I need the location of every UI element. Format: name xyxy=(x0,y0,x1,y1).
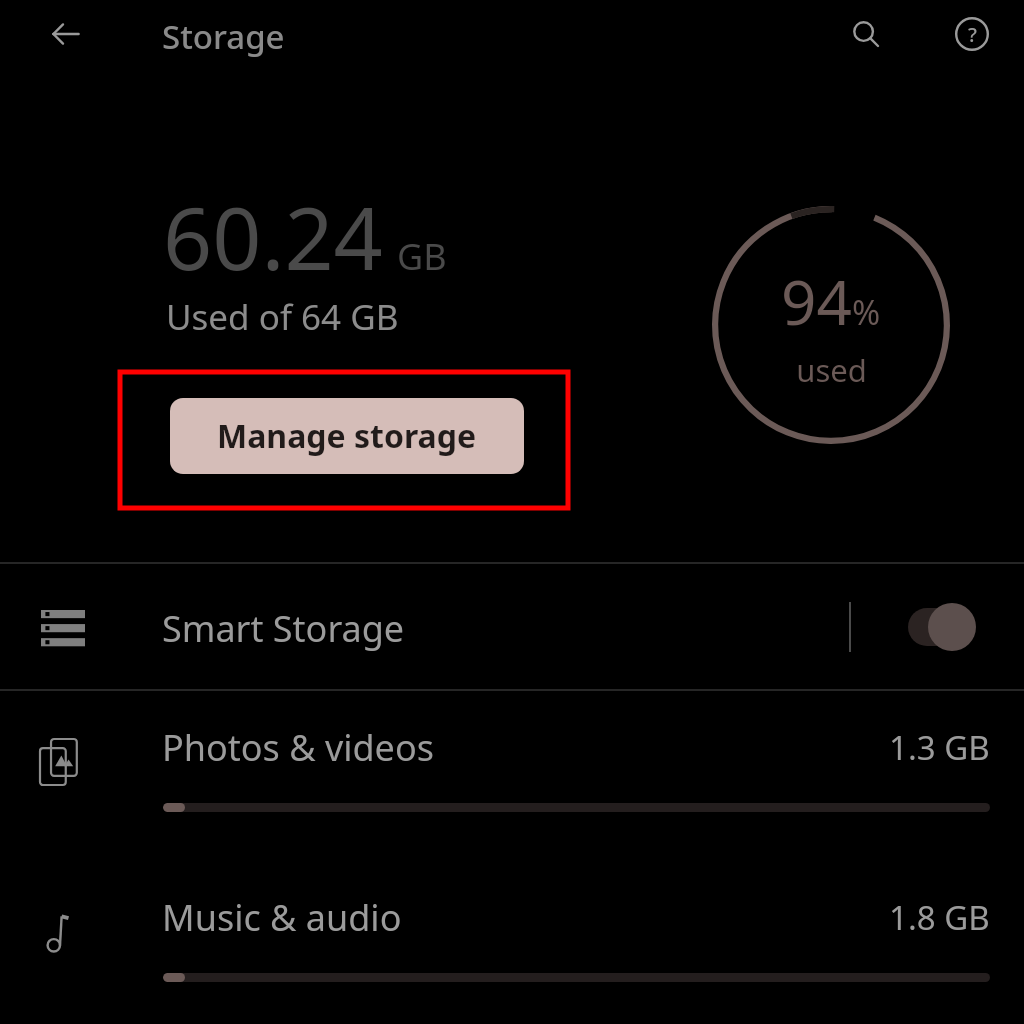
staticText: Photos & videos xyxy=(162,723,434,772)
staticText: Manage storage xyxy=(217,414,477,458)
staticText: % xyxy=(852,289,881,335)
staticText: 60.24 xyxy=(163,178,383,295)
staticText: 1.8 GB xyxy=(889,895,990,940)
staticText: ? xyxy=(968,21,977,48)
staticText: 1.3 GB xyxy=(889,725,990,770)
button[interactable]: Manage storage xyxy=(170,398,524,474)
button[interactable]: Smart Storage xyxy=(0,564,1024,689)
button[interactable]: Help xyxy=(944,6,1000,62)
button[interactable]: Search xyxy=(838,6,894,62)
button[interactable]: Smart Storage toggle xyxy=(890,600,990,654)
staticText: GB xyxy=(397,232,447,281)
button[interactable]: Photos & videos xyxy=(0,691,1024,861)
staticText: 94 xyxy=(781,259,852,343)
button[interactable]: Back xyxy=(38,6,94,62)
button[interactable]: Music & audio xyxy=(0,861,1024,1024)
staticText: Smart Storage xyxy=(162,604,405,653)
staticText: Storage xyxy=(162,14,285,59)
staticText: Used of 64 GB xyxy=(166,293,399,341)
staticText: used xyxy=(796,349,867,391)
staticText: Music & audio xyxy=(162,893,402,942)
